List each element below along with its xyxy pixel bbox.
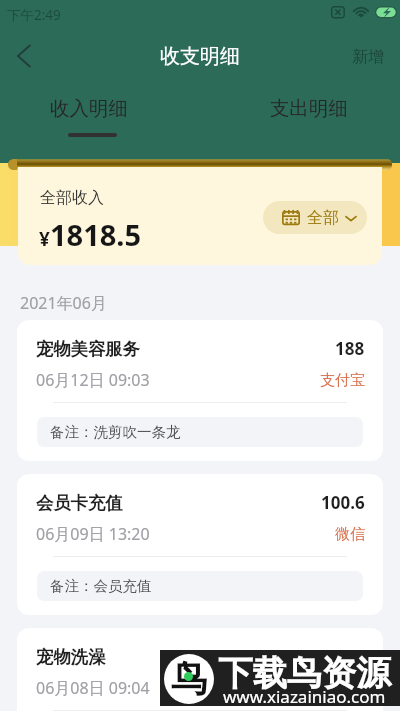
staticText: 全部: [307, 208, 339, 228]
button[interactable]: 宠物洗澡: [17, 628, 383, 711]
staticText: 100.6: [321, 491, 365, 514]
staticText: 下载鸟资源: [218, 652, 391, 695]
staticText: 188: [335, 337, 365, 360]
staticText: 全部收入: [40, 188, 104, 208]
staticText: ¥: [39, 226, 50, 252]
staticText: 宠物美容服务: [36, 338, 140, 360]
staticText: www.xiazainiao.com: [223, 685, 386, 708]
staticText: 下午2:49: [7, 6, 61, 24]
staticText: 支出明细: [270, 96, 348, 121]
staticText: 2021年06月: [20, 292, 107, 314]
staticText: 收入明细: [50, 96, 128, 121]
staticText: 鸟: [171, 656, 207, 701]
staticText: 06月12日 09:03: [36, 369, 150, 391]
button[interactable]: Back: [4, 36, 44, 76]
staticText: 支付宝: [320, 371, 365, 390]
button[interactable]: 全部: [263, 201, 367, 234]
button[interactable]: 新增: [345, 40, 391, 74]
staticText: 06月08日 09:04: [36, 677, 150, 699]
button[interactable]: 宠物美容服务: [17, 320, 383, 461]
staticText: 1818.5: [50, 215, 142, 254]
button[interactable]: 会员卡充值: [17, 474, 383, 615]
button[interactable]: 支出明细: [240, 90, 378, 140]
staticText: 宠物洗澡: [36, 646, 106, 668]
staticText: 新增: [352, 47, 384, 67]
staticText: 备注：会员充值: [50, 577, 152, 595]
staticText: 微信: [335, 525, 365, 544]
button[interactable]: 收入明细: [20, 90, 158, 140]
staticText: 58: [345, 645, 365, 668]
staticText: 06月09日 13:20: [36, 523, 150, 545]
staticText: 现金: [335, 679, 365, 698]
staticText: 备注：洗剪吹一条龙: [50, 423, 181, 441]
staticText: 收支明细: [160, 44, 240, 69]
staticText: 会员卡充值: [36, 492, 123, 514]
